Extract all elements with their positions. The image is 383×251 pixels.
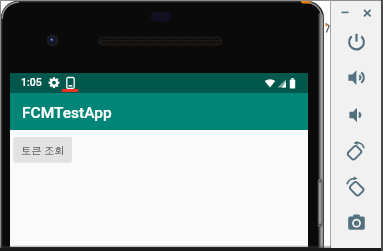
staticText: FCMTestApp bbox=[22, 104, 112, 122]
button[interactable] bbox=[344, 104, 369, 129]
button[interactable] bbox=[344, 29, 369, 54]
button[interactable] bbox=[338, 6, 351, 19]
button[interactable]: 토큰 조회 bbox=[14, 137, 72, 162]
staticText: 1:05 bbox=[21, 76, 42, 88]
button[interactable] bbox=[344, 175, 369, 200]
button[interactable] bbox=[344, 208, 369, 233]
staticText: 토큰 조회 bbox=[21, 143, 65, 157]
button[interactable] bbox=[361, 6, 374, 19]
button[interactable] bbox=[344, 141, 369, 166]
button[interactable] bbox=[344, 66, 369, 91]
